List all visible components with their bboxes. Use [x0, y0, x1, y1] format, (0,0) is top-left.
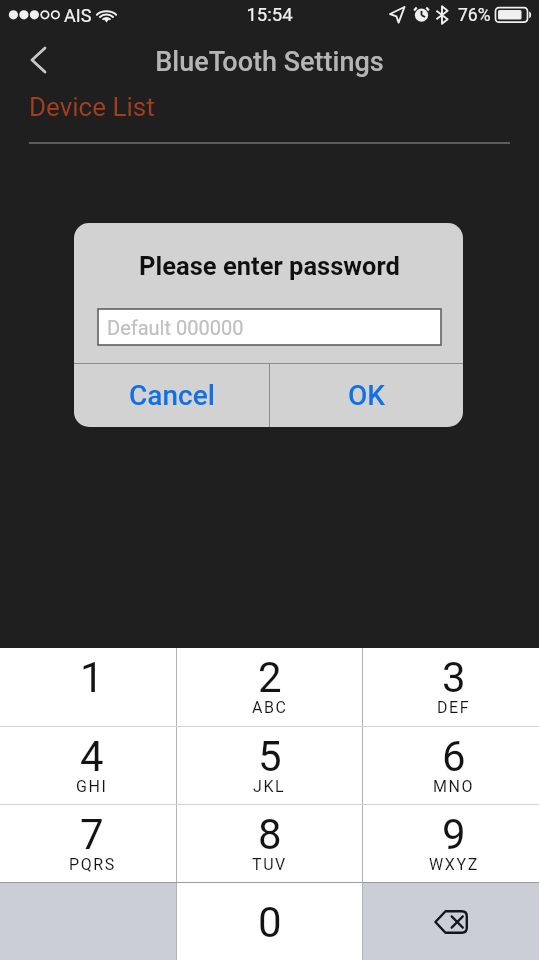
- staticText: 1: [80, 653, 104, 702]
- staticText: BlueTooth Settings: [0, 46, 539, 78]
- button[interactable]: 6: [363, 727, 539, 804]
- button[interactable]: 2: [177, 648, 362, 726]
- button[interactable]: 8: [177, 805, 362, 882]
- staticText: Please enter password: [75, 251, 463, 281]
- staticText: 2: [258, 653, 282, 702]
- button[interactable]: 1: [0, 648, 176, 726]
- staticText: AIS: [64, 5, 92, 26]
- staticText: 9: [442, 810, 466, 859]
- button[interactable]: 0: [177, 883, 362, 960]
- button[interactable]: 5: [177, 727, 362, 804]
- staticText: OK: [348, 379, 385, 412]
- button[interactable]: 7: [0, 805, 176, 882]
- staticText: Cancel: [129, 379, 215, 412]
- staticText: JKL: [253, 777, 286, 796]
- button[interactable]: 9: [363, 805, 539, 882]
- staticText: 15:54: [0, 4, 539, 26]
- button[interactable]: 4: [0, 727, 176, 804]
- staticText: 4: [80, 732, 104, 781]
- button[interactable]: Delete: [363, 883, 539, 960]
- staticText: 3: [442, 653, 466, 702]
- staticText: ABC: [252, 698, 288, 717]
- button[interactable]: OK: [270, 364, 463, 427]
- staticText: 8: [258, 810, 282, 859]
- button[interactable]: 3: [363, 648, 539, 726]
- staticText: 5: [258, 732, 282, 781]
- staticText: Default 000000: [107, 316, 244, 339]
- staticText: 6: [442, 732, 466, 781]
- staticText: 76%: [458, 5, 491, 26]
- button[interactable]: Cancel: [74, 364, 269, 427]
- staticText: GHI: [76, 777, 108, 796]
- staticText: DEF: [437, 698, 471, 717]
- staticText: WXYZ: [429, 855, 479, 874]
- staticText: Device List: [29, 92, 155, 122]
- staticText: TUV: [252, 855, 287, 874]
- button[interactable]: Back: [16, 36, 64, 84]
- staticText: 7: [80, 810, 104, 859]
- staticText: MNO: [433, 777, 475, 796]
- staticText: 0: [258, 898, 282, 947]
- staticText: PQRS: [69, 855, 116, 874]
